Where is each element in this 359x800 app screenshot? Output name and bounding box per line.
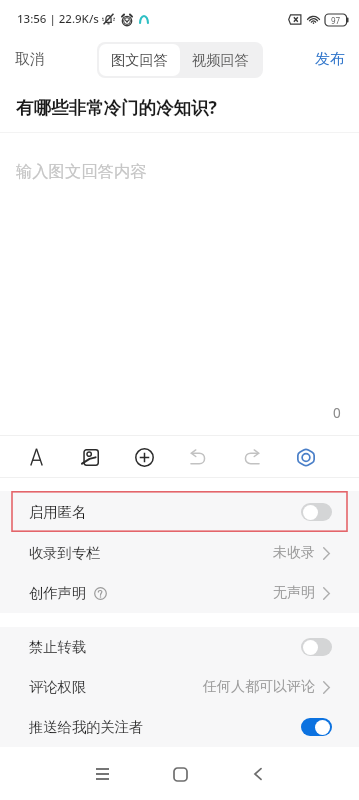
button[interactable]: Redo — [234, 439, 270, 475]
staticText: 评论权限 — [29, 678, 87, 696]
button[interactable]: Settings — [288, 439, 324, 475]
button[interactable]: 取消 — [0, 42, 60, 77]
button[interactable]: 启用匿名 — [0, 491, 359, 532]
button[interactable]: Home — [154, 748, 206, 800]
button[interactable]: Toggle off — [301, 638, 332, 656]
button[interactable]: 发布 — [301, 42, 359, 77]
button[interactable]: 禁止转载 — [0, 627, 359, 667]
staticText: 创作声明 — [29, 584, 87, 602]
staticText: 启用匿名 — [29, 503, 87, 521]
button[interactable]: 创作声明 — [0, 573, 359, 613]
staticText: 收录到专栏 — [29, 544, 101, 562]
staticText: 推送给我的关注者 — [29, 718, 144, 736]
button[interactable]: Toggle on — [301, 718, 332, 736]
staticText: 97 — [331, 15, 341, 26]
staticText: 0 — [333, 404, 341, 422]
staticText: 取消 — [15, 50, 45, 69]
button[interactable]: 图文回答 — [99, 44, 180, 76]
button[interactable]: Recents — [76, 748, 128, 800]
button[interactable]: Text style — [18, 439, 54, 475]
staticText: 13:56 | 22.9K/s — [17, 11, 99, 27]
staticText: 无声明 — [273, 584, 315, 602]
staticText: 视频回答 — [192, 51, 249, 69]
button[interactable]: 评论权限 — [0, 667, 359, 707]
button[interactable]: 收录到专栏 — [0, 532, 359, 573]
button[interactable]: Add — [126, 439, 162, 475]
button[interactable]: Insert image — [72, 439, 108, 475]
button[interactable]: Back — [232, 748, 284, 800]
staticText: 未收录 — [273, 544, 315, 562]
staticText: 发布 — [315, 50, 345, 69]
button[interactable]: Toggle off — [301, 503, 332, 521]
button[interactable]: 视频回答 — [180, 44, 261, 76]
staticText: 禁止转载 — [29, 638, 87, 656]
staticText: 有哪些非常冷门的冷知识? — [16, 95, 343, 119]
button[interactable]: Undo — [180, 439, 216, 475]
staticText: 输入图文回答内容 — [16, 161, 147, 182]
staticText: 图文回答 — [111, 51, 168, 69]
button[interactable]: 推送给我的关注者 — [0, 707, 359, 747]
staticText: 任何人都可以评论 — [203, 678, 315, 696]
